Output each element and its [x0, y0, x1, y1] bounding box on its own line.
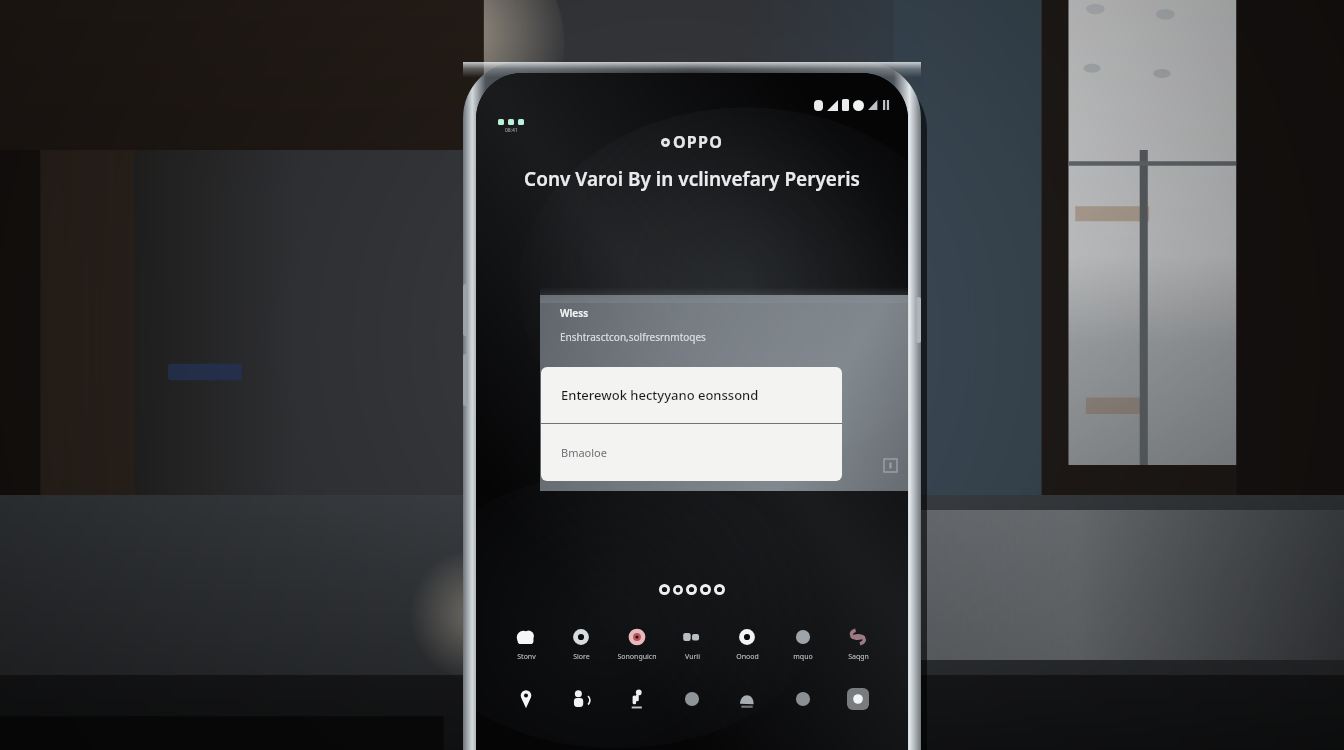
button[interactable]: More [884, 459, 897, 472]
button[interactable]: Saqgn [836, 626, 880, 662]
staticText: Vurii [685, 652, 700, 662]
staticText: Saqgn [848, 652, 869, 662]
button[interactable]: Vurii [670, 626, 714, 662]
button[interactable]: App [504, 688, 548, 710]
button[interactable]: Sononguicn [615, 626, 659, 662]
staticText: mquo [793, 652, 813, 662]
staticText: Wless [560, 306, 589, 320]
button[interactable]: Siore [559, 626, 603, 662]
button[interactable]: Stonv [504, 626, 548, 662]
staticText: Bmaoloe [561, 445, 607, 460]
staticText: Enterewok hectyyano eonssond [561, 386, 759, 404]
button[interactable]: App [670, 688, 714, 710]
staticText: 08:41 [505, 127, 518, 134]
button[interactable]: Enterewok hectyyano eonssond [541, 367, 842, 481]
button[interactable]: App [559, 688, 603, 710]
staticText: OPPO [673, 131, 723, 153]
button[interactable]: App [781, 688, 825, 710]
button[interactable]: App [615, 688, 659, 710]
staticText: Conv Varoi By in vclinvefary Peryeris [490, 166, 894, 192]
staticText: Enshtrasctcon,solfresrnmtoqes [560, 330, 706, 344]
staticText: Sononguicn [617, 652, 657, 662]
button[interactable]: App [725, 688, 769, 710]
button[interactable]: mquo [781, 626, 825, 662]
button[interactable]: Onood [725, 626, 769, 662]
staticText: Onood [736, 652, 759, 662]
button[interactable]: App [836, 688, 880, 710]
staticText: Siore [573, 652, 590, 662]
staticText: Stonv [517, 652, 536, 662]
